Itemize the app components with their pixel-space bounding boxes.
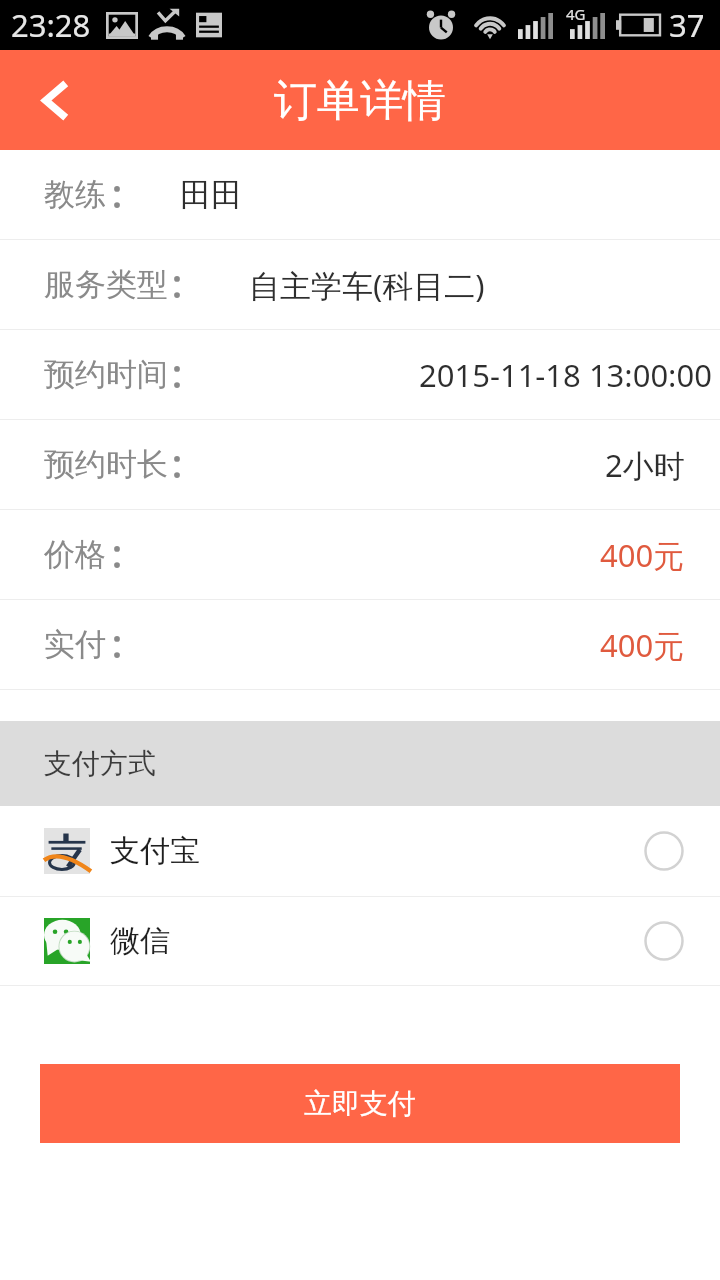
staticText: 400元	[600, 534, 685, 576]
staticText: 支付方式	[44, 746, 156, 781]
staticText: 微信	[110, 922, 170, 960]
button[interactable]: 支付宝	[0, 806, 720, 896]
button[interactable]: 微信	[0, 897, 720, 985]
button[interactable]: Select 微信	[644, 921, 684, 961]
staticText: 价格	[44, 535, 106, 574]
staticText: 2015-11-18 13:00:00	[419, 354, 712, 396]
staticText: 支付宝	[110, 832, 200, 870]
staticText: 预约时间	[44, 355, 168, 394]
staticText: 37	[669, 4, 705, 46]
staticText: 教练	[44, 175, 106, 214]
staticText: 订单详情	[274, 74, 446, 128]
button[interactable]: Back	[0, 50, 110, 150]
staticText: 立即支付	[304, 1086, 416, 1121]
staticText: 服务类型	[44, 265, 168, 304]
button[interactable]: Select 支付宝	[644, 831, 684, 871]
staticText: 实付	[44, 625, 106, 664]
staticText: 自主学车(科目二)	[249, 264, 485, 306]
staticText: 预约时长	[44, 445, 168, 484]
staticText: 23:28	[11, 4, 91, 46]
staticText: 400元	[600, 624, 685, 666]
staticText: 4G	[566, 4, 586, 24]
staticText: 田田	[180, 175, 242, 214]
staticText: 2小时	[605, 444, 685, 486]
button[interactable]: 立即支付	[40, 1064, 680, 1143]
